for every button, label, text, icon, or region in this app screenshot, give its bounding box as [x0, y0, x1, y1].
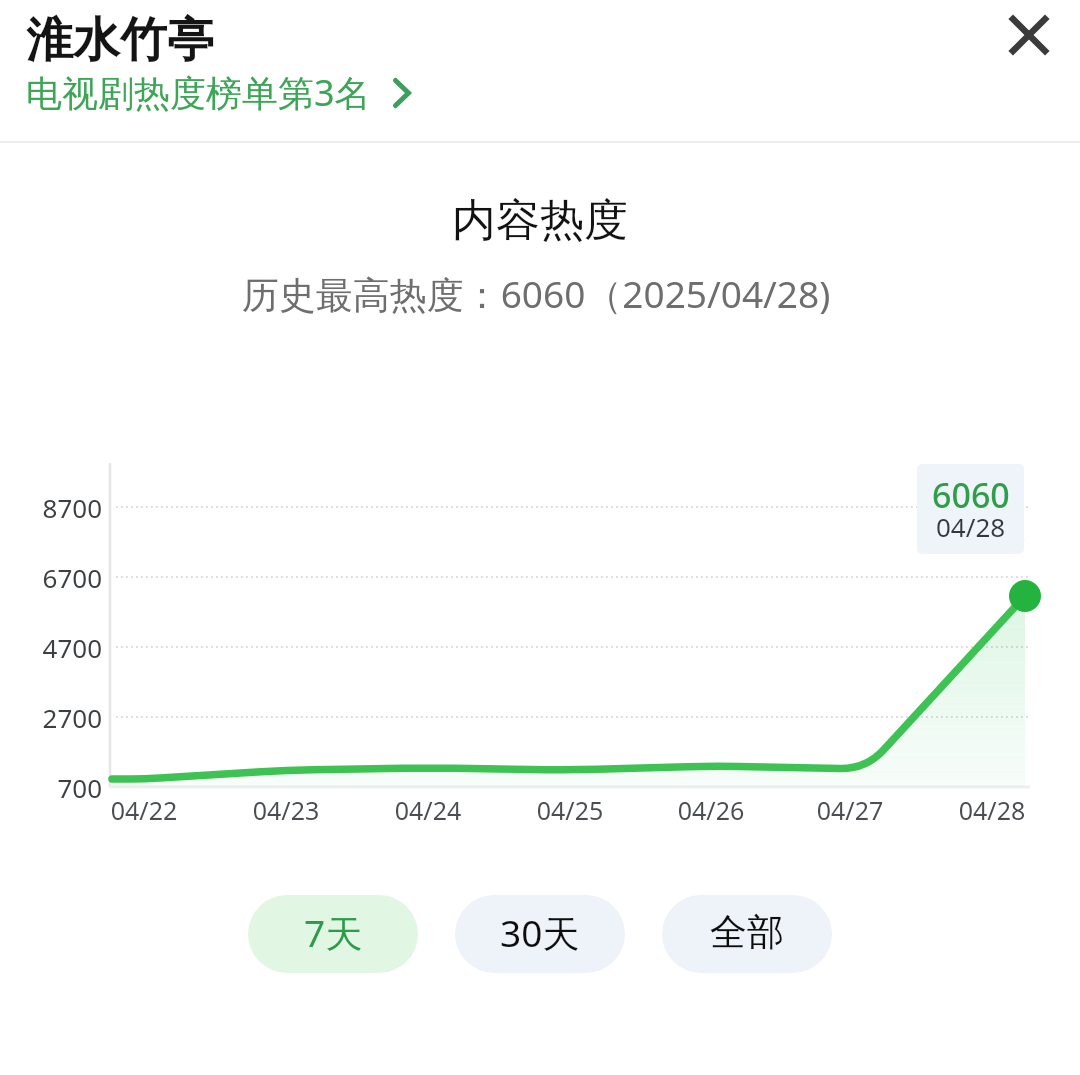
- button[interactable]: 电视剧热度榜单第3名: [26, 68, 411, 117]
- staticText: 7天: [304, 907, 363, 958]
- staticText: 2700: [0, 700, 102, 735]
- staticText: 历史最高热度：6060（2025/04/28): [0, 268, 1076, 319]
- staticText: 4700: [0, 630, 102, 665]
- staticText: 700: [0, 770, 102, 805]
- staticText: 6700: [0, 560, 102, 595]
- button[interactable]: 7天: [248, 895, 418, 973]
- staticText: 04/24: [358, 793, 498, 827]
- staticText: 04/28: [936, 509, 1006, 544]
- staticText: 8700: [0, 490, 102, 525]
- staticText: 6060: [932, 472, 1010, 518]
- staticText: 30天: [500, 907, 580, 958]
- staticText: 04/23: [216, 793, 356, 827]
- staticText: 全部: [710, 909, 784, 956]
- staticText: 淮水竹亭: [26, 11, 214, 70]
- button[interactable]: 全部: [662, 895, 832, 973]
- staticText: 电视剧热度榜单第3名: [26, 68, 371, 117]
- button[interactable]: Close: [992, 0, 1064, 72]
- staticText: 04/27: [780, 793, 920, 827]
- staticText: 04/22: [74, 793, 214, 827]
- staticText: 04/28: [922, 793, 1062, 827]
- button[interactable]: 30天: [455, 895, 625, 973]
- staticText: 04/25: [500, 793, 640, 827]
- staticText: 04/26: [641, 793, 781, 827]
- staticText: 内容热度: [0, 193, 1080, 248]
